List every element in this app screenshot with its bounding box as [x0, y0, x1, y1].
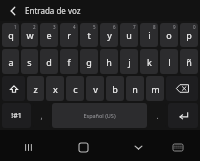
staticText: g	[86, 56, 92, 68]
staticText: d	[46, 56, 52, 68]
staticText: 1	[14, 24, 17, 30]
button[interactable]: x	[46, 76, 64, 101]
button[interactable]: Shift	[2, 76, 25, 101]
staticText: 4	[73, 24, 76, 30]
button[interactable]: d	[40, 49, 58, 74]
button[interactable]: p	[180, 23, 198, 47]
staticText: s	[27, 56, 32, 68]
staticText: a	[8, 56, 14, 68]
button[interactable]: ñ	[180, 49, 198, 74]
staticText: z	[33, 83, 38, 95]
button[interactable]: v	[86, 76, 104, 101]
staticText: y	[107, 29, 112, 41]
button[interactable]: Home	[70, 134, 96, 160]
button[interactable]: e	[40, 23, 58, 47]
staticText: t	[87, 29, 91, 41]
button[interactable]: Español (US)	[52, 103, 147, 128]
button[interactable]: r	[60, 23, 78, 47]
staticText: p	[186, 29, 192, 41]
staticText: l	[168, 56, 171, 68]
button[interactable]: j	[120, 49, 138, 74]
button[interactable]: z	[27, 76, 44, 101]
staticText: 3	[53, 24, 56, 30]
staticText: .	[156, 110, 159, 121]
staticText: 6	[113, 24, 116, 30]
staticText: ñ	[186, 56, 192, 68]
staticText: q	[8, 29, 14, 41]
button[interactable]: Recent apps	[16, 135, 40, 159]
button[interactable]: l	[160, 49, 178, 74]
staticText: 2	[33, 24, 36, 30]
staticText: Entrada de voz	[25, 5, 81, 16]
button[interactable]: u	[120, 23, 138, 47]
button[interactable]: n	[126, 76, 144, 101]
button[interactable]: g	[80, 49, 98, 74]
staticText: 0	[193, 24, 196, 30]
button[interactable]: w	[21, 23, 38, 47]
staticText: Español (US)	[83, 112, 116, 119]
staticText: o	[166, 29, 172, 41]
button[interactable]: m	[146, 76, 164, 101]
button[interactable]: c	[66, 76, 84, 101]
staticText: w	[26, 29, 34, 41]
staticText: 8	[153, 24, 156, 30]
button[interactable]: Backspace	[166, 76, 198, 101]
button[interactable]: o	[160, 23, 178, 47]
button[interactable]: Enter	[168, 103, 198, 128]
staticText: 5	[93, 24, 96, 30]
staticText: f	[67, 56, 71, 68]
staticText: h	[106, 56, 112, 68]
staticText: 9	[173, 24, 176, 30]
staticText: j	[128, 56, 131, 68]
button[interactable]: q	[2, 23, 19, 47]
staticText: e	[46, 29, 52, 41]
button[interactable]: !#1	[2, 103, 31, 128]
button[interactable]: t	[80, 23, 98, 47]
staticText: b	[112, 83, 118, 95]
staticText: c	[73, 83, 78, 95]
staticText: m	[151, 83, 160, 95]
button[interactable]: Change keyboard	[167, 136, 189, 158]
staticText: 7	[133, 24, 136, 30]
button[interactable]: s	[21, 49, 38, 74]
button[interactable]: h	[100, 49, 118, 74]
staticText: v	[93, 83, 98, 95]
button[interactable]: a	[2, 49, 19, 74]
button[interactable]: Back	[4, 0, 21, 21]
staticText: n	[132, 83, 138, 95]
button[interactable]: Hide keyboard	[126, 135, 150, 159]
button[interactable]: ,	[33, 103, 50, 128]
staticText: i	[148, 29, 151, 41]
button[interactable]: .	[149, 103, 166, 128]
staticText: x	[53, 83, 58, 95]
button[interactable]: y	[100, 23, 118, 47]
staticText: k	[147, 56, 152, 68]
staticText: u	[126, 29, 132, 41]
button[interactable]: k	[140, 49, 158, 74]
button[interactable]: f	[60, 49, 78, 74]
staticText: r	[67, 29, 71, 41]
button[interactable]: i	[140, 23, 158, 47]
staticText: !#1	[11, 111, 22, 121]
button[interactable]: b	[106, 76, 124, 101]
staticText: ,	[40, 110, 43, 121]
